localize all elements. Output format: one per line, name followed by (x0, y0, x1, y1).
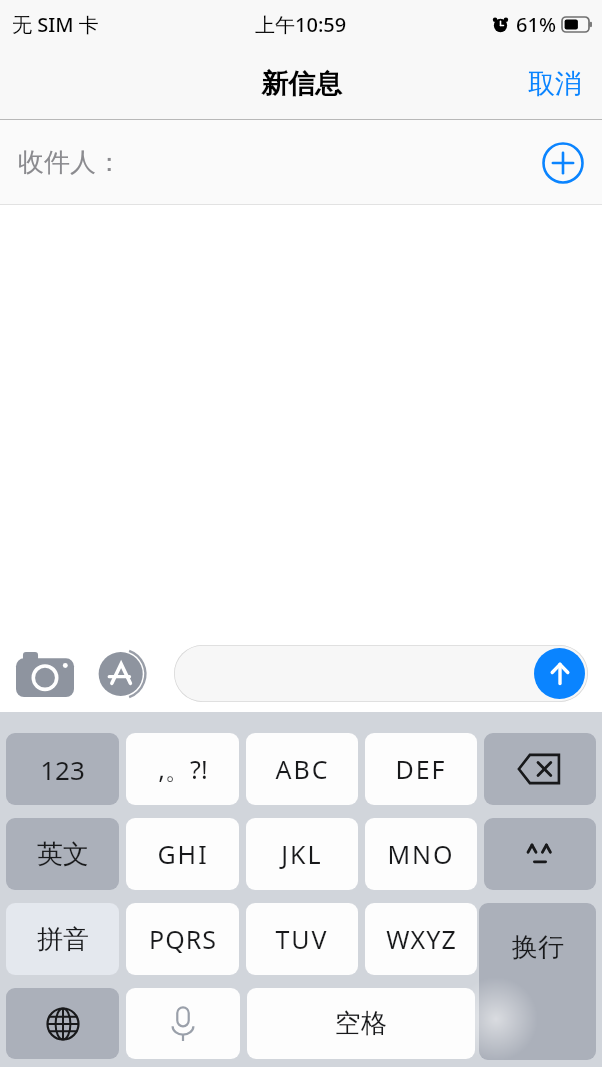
staticText: 61% (516, 11, 556, 38)
button[interactable]: ABC (246, 733, 358, 805)
staticText: 拼音 (37, 923, 89, 956)
button[interactable]: Camera (14, 643, 76, 705)
button[interactable]: JKL (246, 818, 358, 890)
staticText: MNO (387, 837, 455, 871)
button[interactable]: 拼音 (6, 903, 119, 975)
staticText: ABC (275, 752, 330, 786)
button[interactable]: WXYZ (365, 903, 477, 975)
button[interactable]: Switch keyboard (6, 988, 119, 1059)
button[interactable]: DEF (365, 733, 477, 805)
staticText: 123 (40, 752, 85, 787)
button[interactable]: Add contact (540, 140, 586, 186)
button[interactable]: Delete (484, 733, 596, 805)
staticText: WXYZ (386, 922, 457, 956)
button[interactable]: Send (174, 645, 588, 702)
button[interactable]: 取消 (522, 61, 588, 107)
staticText: 收件人： (18, 146, 122, 179)
staticText: 取消 (528, 67, 582, 101)
staticText: 英文 (37, 838, 89, 871)
button[interactable]: ,。?! (126, 733, 239, 805)
button[interactable]: GHI (126, 818, 239, 890)
staticText: JKL (281, 837, 323, 871)
button[interactable]: MNO (365, 818, 477, 890)
button[interactable]: PQRS (126, 903, 239, 975)
staticText: 换行 (512, 931, 564, 964)
staticText: ,。?! (158, 752, 208, 786)
button[interactable]: App Store (92, 643, 154, 705)
button[interactable]: 123 (6, 733, 119, 805)
button[interactable]: Dictation (126, 988, 240, 1059)
button[interactable]: 空格 (247, 988, 475, 1059)
staticText: PQRS (149, 922, 217, 956)
button[interactable]: 收件人： (0, 120, 602, 205)
button[interactable]: 英文 (6, 818, 119, 890)
staticText: 新信息 (261, 67, 342, 101)
button[interactable]: TUV (246, 903, 358, 975)
staticText: DEF (395, 752, 447, 786)
button[interactable]: 换行 (479, 903, 596, 1060)
staticText: 空格 (335, 1007, 387, 1040)
button[interactable]: Emoji (484, 818, 596, 890)
staticText: 无 SIM 卡 (12, 11, 99, 38)
button[interactable]: Send (534, 648, 585, 699)
staticText: 上午10:59 (255, 11, 347, 38)
staticText: TUV (275, 922, 329, 956)
staticText: GHI (157, 837, 209, 871)
